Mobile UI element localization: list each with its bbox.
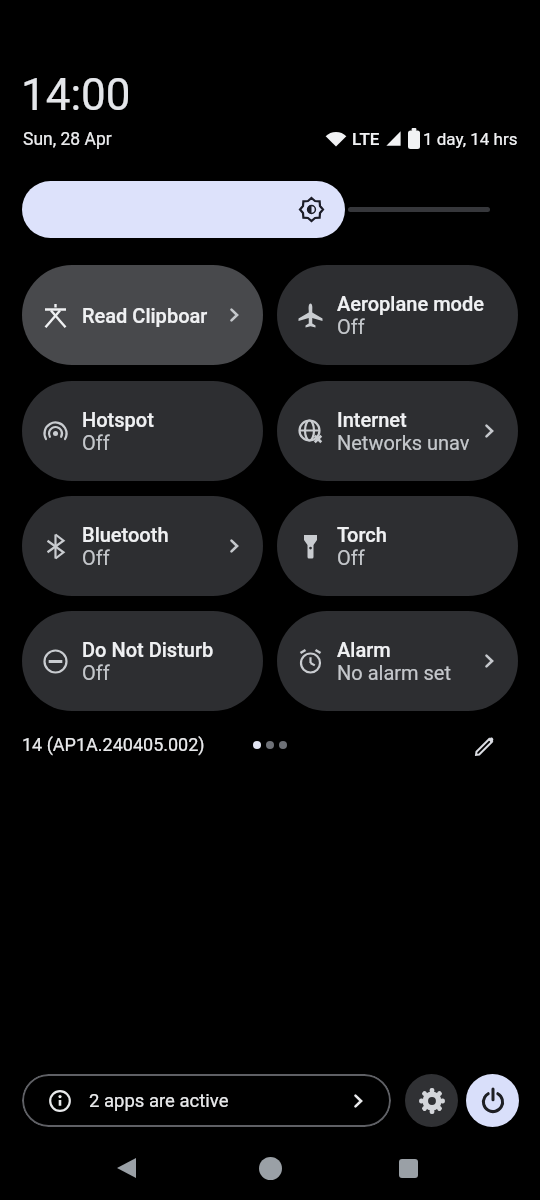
staticText: Do Not Disturb [82, 638, 214, 661]
button[interactable]: Read Clipboar [22, 265, 263, 365]
staticText: LTE [352, 129, 380, 149]
button[interactable]: 2 apps are active [22, 1074, 391, 1127]
staticText: Read Clipboar [82, 304, 208, 327]
button[interactable]: Bluetooth [22, 496, 263, 596]
staticText: Off [337, 546, 365, 569]
staticText: Off [82, 546, 110, 569]
button[interactable] [107, 1148, 147, 1188]
button[interactable] [466, 1074, 519, 1127]
button[interactable]: Alarm [277, 611, 518, 711]
button[interactable] [388, 1148, 428, 1188]
button[interactable] [466, 726, 504, 764]
staticText: Torch [337, 523, 387, 546]
staticText: Hotspot [82, 408, 154, 431]
button[interactable] [405, 1074, 458, 1127]
staticText: Bluetooth [82, 523, 169, 546]
staticText: Internet [337, 408, 407, 431]
staticText: Off [82, 431, 110, 454]
staticText: Off [82, 661, 110, 684]
button[interactable] [250, 1148, 290, 1188]
button[interactable]: Aeroplane mode [277, 265, 518, 365]
button[interactable]: Do Not Disturb [22, 611, 263, 711]
staticText: 1 day, 14 hrs [423, 129, 518, 149]
staticText: Aeroplane mode [337, 292, 484, 315]
staticText: Alarm [337, 638, 391, 661]
button[interactable]: Hotspot [22, 381, 263, 481]
staticText: 14 (AP1A.240405.002) [22, 734, 205, 755]
staticText: 14:00 [21, 69, 131, 121]
staticText: No alarm set [337, 661, 452, 684]
staticText: Sun, 28 Apr [23, 129, 112, 150]
staticText: Networks unav [337, 431, 470, 454]
button[interactable]: Internet [277, 381, 518, 481]
button[interactable] [22, 181, 345, 238]
staticText: Off [337, 315, 365, 338]
button[interactable]: Torch [277, 496, 518, 596]
staticText: 2 apps are active [89, 1090, 229, 1112]
